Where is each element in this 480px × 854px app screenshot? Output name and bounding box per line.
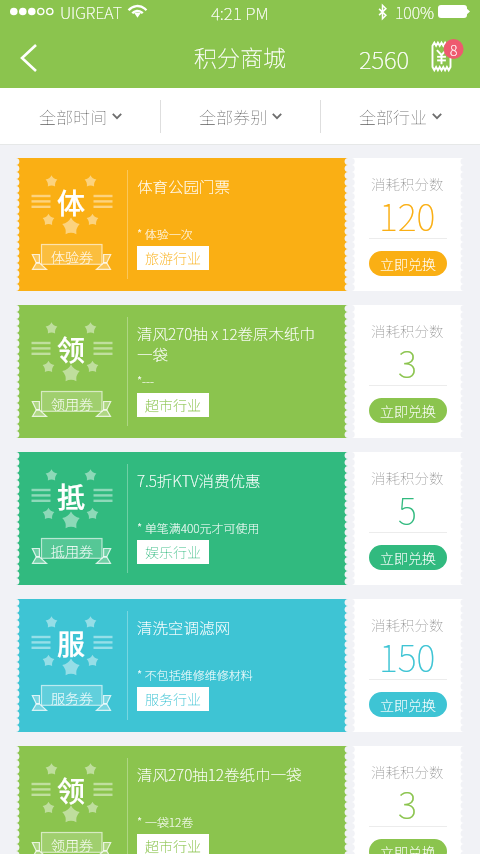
staticText: *--- — [137, 372, 154, 389]
button[interactable]: 全部行业 — [321, 88, 480, 144]
staticText: 消耗积分数 — [371, 467, 444, 488]
staticText: 领 — [57, 770, 86, 811]
staticText: 4:21 PM — [211, 0, 269, 23]
staticText: 150 — [379, 630, 436, 682]
staticText: 全部券别 — [199, 104, 267, 129]
staticText: 服务行业 — [145, 689, 201, 709]
staticText: 立即兑换 — [380, 695, 436, 715]
staticText: 8 — [450, 40, 458, 60]
staticText: 立即兑换 — [380, 401, 436, 421]
button[interactable]: 立即兑换 — [369, 398, 447, 423]
staticText: 5 — [398, 483, 417, 535]
staticText: 领 — [57, 329, 86, 370]
staticText: 抵用券 — [51, 541, 93, 561]
staticText: 体育公园门票 — [137, 175, 231, 197]
button[interactable]: 体 — [16, 158, 464, 291]
staticText: 清洗空调滤网 — [137, 616, 231, 638]
staticText: 清风270抽12卷纸巾一袋 — [137, 763, 302, 785]
staticText: 服务券 — [51, 688, 93, 708]
staticText: 全部时间 — [39, 104, 107, 129]
staticText: * 体验一次 — [137, 225, 193, 242]
staticText: 积分商城 — [194, 40, 286, 73]
staticText: 100% — [395, 0, 435, 23]
staticText: * 一袋12卷 — [137, 813, 194, 830]
button[interactable]: 全部时间 — [0, 88, 160, 144]
button[interactable]: 全部券别 — [161, 88, 320, 144]
staticText: 旅游行业 — [145, 248, 201, 268]
staticText: 立即兑换 — [380, 254, 436, 274]
staticText: 消耗积分数 — [371, 320, 444, 341]
staticText: 消耗积分数 — [371, 173, 444, 194]
button[interactable]: Back — [0, 29, 58, 87]
staticText: 全部行业 — [359, 104, 427, 129]
button[interactable]: My coupons — [424, 35, 470, 81]
staticText: 体验券 — [51, 247, 93, 267]
button[interactable]: 立即兑换 — [369, 839, 447, 854]
staticText: 消耗积分数 — [371, 761, 444, 782]
staticText: 3 — [398, 777, 417, 829]
staticText: 120 — [379, 189, 436, 241]
button[interactable]: 立即兑换 — [369, 545, 447, 570]
staticText: 消耗积分数 — [371, 614, 444, 635]
staticText: 抵 — [57, 476, 86, 517]
button[interactable]: 抵 — [16, 452, 464, 585]
staticText: 领用券 — [51, 394, 93, 414]
staticText: 7.5折KTV消费优惠 — [137, 469, 261, 491]
button[interactable]: 服 — [16, 599, 464, 732]
staticText: 3 — [398, 336, 417, 388]
staticText: 超市行业 — [145, 836, 201, 854]
button[interactable]: 领 — [16, 305, 464, 438]
staticText: 立即兑换 — [380, 548, 436, 568]
staticText: 清风270抽 x 12卷原木纸巾一袋 — [137, 322, 328, 365]
staticText: 超市行业 — [145, 395, 201, 415]
staticText: UIGREAT — [60, 0, 122, 23]
staticText: 服 — [57, 623, 86, 664]
staticText: 娱乐行业 — [145, 542, 201, 562]
staticText: 立即兑换 — [380, 842, 436, 854]
button[interactable]: 领 — [16, 746, 464, 854]
staticText: 2560 — [359, 41, 410, 76]
staticText: 领用券 — [51, 835, 93, 854]
button[interactable]: 立即兑换 — [369, 251, 447, 276]
button[interactable]: 立即兑换 — [369, 692, 447, 717]
staticText: * 单笔满400元才可使用 — [137, 519, 260, 536]
staticText: * 不包括维修维修材料 — [137, 666, 253, 683]
staticText: 体 — [57, 182, 86, 223]
